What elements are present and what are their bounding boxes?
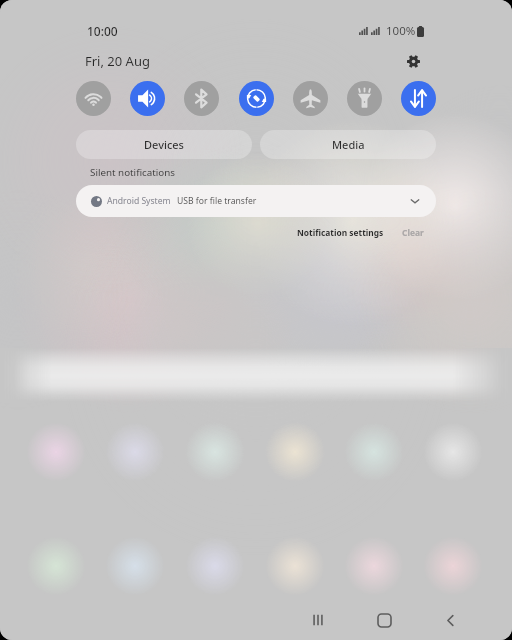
button[interactable]: Notification settings: [295, 224, 386, 241]
button[interactable]: Home: [362, 600, 406, 640]
button[interactable]: Sound: [130, 81, 165, 116]
staticText: Notification settings: [297, 227, 384, 238]
button[interactable]: Bluetooth: [184, 81, 219, 116]
staticText: Media: [332, 137, 365, 152]
button[interactable]: Settings: [401, 50, 425, 72]
button[interactable]: Flashlight: [347, 81, 382, 116]
staticText: Devices: [144, 137, 184, 152]
staticText: Fri, 20 Aug: [85, 52, 150, 70]
button[interactable]: Mobile data: [401, 81, 436, 116]
staticText: Clear: [402, 227, 424, 238]
staticText: 10:00: [87, 23, 118, 39]
staticText: Silent notifications: [90, 166, 175, 179]
button[interactable]: Android System: [76, 185, 436, 217]
button[interactable]: Recents: [296, 600, 340, 640]
button[interactable]: Airplane mode: [293, 81, 328, 116]
button[interactable]: Media: [260, 130, 436, 159]
staticText: USB for file transfer: [177, 195, 257, 207]
button[interactable]: Auto rotate: [239, 81, 274, 116]
button[interactable]: Back: [428, 600, 472, 640]
button[interactable]: Wi-Fi: [76, 81, 111, 116]
button[interactable]: Clear: [400, 224, 426, 241]
button[interactable]: Devices: [76, 130, 252, 159]
staticText: 100%: [386, 23, 416, 39]
staticText: Android System: [107, 195, 171, 207]
